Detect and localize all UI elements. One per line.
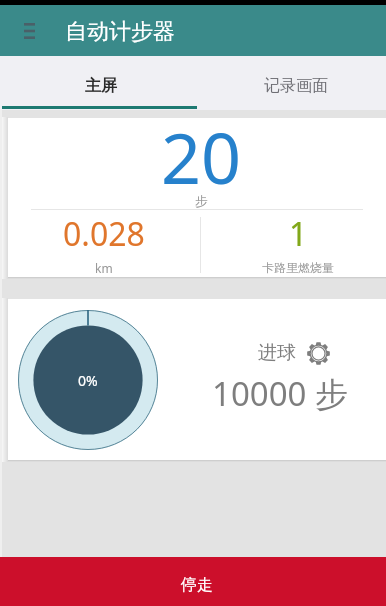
staticText: km	[95, 260, 113, 276]
staticText: 自动计步器	[65, 18, 175, 46]
staticText: 主屏	[85, 76, 117, 96]
button[interactable]: Open navigation menu	[16, 18, 42, 44]
button[interactable]: 停走	[0, 557, 386, 606]
other: Edit goal	[307, 342, 330, 365]
button[interactable]: 1	[201, 210, 386, 277]
staticText: 20	[161, 109, 242, 204]
button[interactable]: 记录画面	[199, 56, 386, 110]
button[interactable]: Daily goal progress 0 percent	[18, 310, 158, 450]
staticText: 1	[289, 212, 308, 256]
staticText: 停走	[181, 575, 213, 595]
staticText: 进球	[258, 341, 296, 365]
staticText: 步	[195, 193, 208, 209]
staticText: 0.028	[63, 212, 145, 256]
staticText: 记录画面	[264, 76, 328, 96]
staticText: 10000 步	[212, 371, 348, 416]
button[interactable]: 0.028	[8, 210, 200, 277]
button[interactable]: 进球	[258, 341, 330, 365]
button[interactable]: 主屏	[0, 56, 199, 110]
staticText: 卡路里燃烧量	[262, 260, 334, 275]
staticText: 0%	[78, 371, 98, 390]
